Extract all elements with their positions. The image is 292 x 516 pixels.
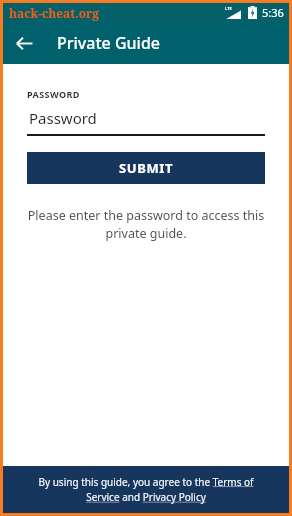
button[interactable]: Password bbox=[27, 108, 265, 136]
staticText: Password bbox=[29, 108, 97, 128]
button[interactable]: By using this guide, you agree to the Te… bbox=[3, 466, 289, 513]
staticText: hack-cheat.org bbox=[9, 5, 100, 21]
staticText: By using this guide, you agree to the Te… bbox=[29, 475, 263, 504]
staticText: LTE bbox=[225, 6, 232, 11]
button[interactable]: SUBMIT bbox=[27, 152, 265, 184]
staticText: Please enter the password to access this… bbox=[27, 207, 265, 242]
button[interactable]: Back bbox=[3, 22, 45, 64]
staticText: PASSWORD bbox=[27, 88, 80, 100]
staticText: Private Guide bbox=[57, 32, 160, 54]
staticText: SUBMIT bbox=[119, 159, 174, 177]
staticText: 5:36 bbox=[262, 5, 284, 20]
